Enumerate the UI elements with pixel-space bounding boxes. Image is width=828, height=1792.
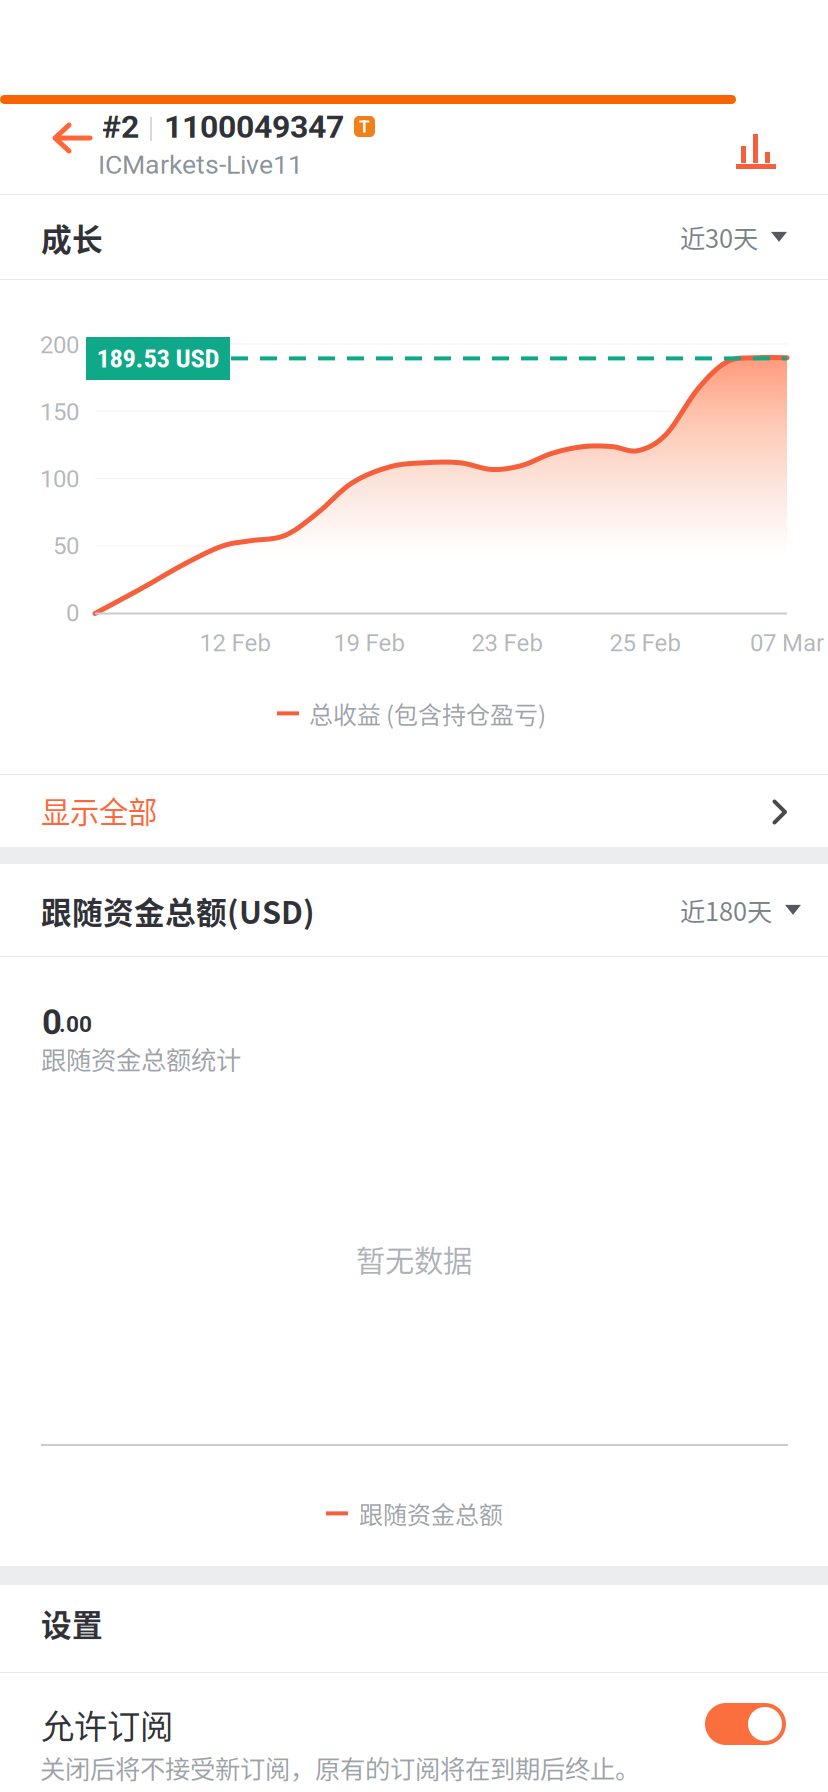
staticText: 1100049347	[164, 108, 344, 145]
staticText: ICMarkets-Live11	[98, 149, 303, 180]
button[interactable]: 近180天	[662, 877, 819, 942]
staticText: 跟随资金总额	[359, 1496, 503, 1531]
staticText: 50	[53, 532, 79, 560]
staticText: 12 Feb	[199, 629, 270, 657]
staticText: 189.53 USD	[96, 343, 219, 374]
button[interactable]: 近30天	[662, 204, 805, 269]
staticText: #2	[102, 108, 139, 145]
staticText: 0	[66, 599, 79, 627]
button[interactable]: Statistics	[717, 110, 797, 182]
staticText: T	[359, 116, 370, 137]
staticText: 显示全部	[41, 789, 157, 831]
staticText: 25 Feb	[609, 629, 680, 657]
staticText: 近180天	[680, 891, 772, 928]
staticText: 允许订阅	[41, 1700, 173, 1748]
button[interactable]: Allow subscriptions	[705, 1703, 786, 1745]
staticText: 暂无数据	[356, 1238, 472, 1280]
button[interactable]: 显示全部	[0, 775, 828, 847]
staticText: 200	[40, 331, 79, 359]
staticText: 19 Feb	[333, 629, 404, 657]
staticText: 设置	[41, 1601, 103, 1645]
staticText: 100	[40, 465, 79, 493]
button[interactable]: Back	[34, 104, 116, 176]
staticText: 成长	[41, 215, 103, 260]
staticText: 07 Mar	[750, 629, 824, 657]
staticText: 总收益 (包含持仓盈亏)	[309, 696, 546, 731]
staticText: 近30天	[680, 218, 758, 255]
staticText: 跟随资金总额统计	[41, 1040, 241, 1077]
staticText: 关闭后将不接受新订阅，原有的订阅将在到期后终止。	[40, 1749, 640, 1786]
staticText: 23 Feb	[471, 629, 542, 657]
staticText: 150	[40, 398, 79, 426]
staticText: 跟随资金总额(USD)	[41, 888, 315, 933]
staticText: 0	[42, 1002, 62, 1043]
staticText: .00	[59, 1011, 92, 1038]
